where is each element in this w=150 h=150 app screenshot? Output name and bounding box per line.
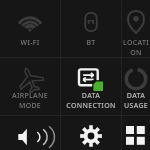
button[interactable]: DATA CONNECTION: [61, 58, 121, 115]
button[interactable]: SETTINGS: [61, 116, 121, 150]
button[interactable]: AIRPLANE MODE: [0, 58, 60, 115]
staticText: LOCATION: [123, 38, 149, 57]
staticText: AIRPLANE MODE: [1, 91, 59, 110]
button[interactable]: VOLUME: [0, 116, 60, 150]
button[interactable]: APPS: [122, 116, 150, 150]
staticText: DATA CONNECTION: [62, 91, 120, 110]
staticText: BT: [62, 38, 120, 48]
staticText: WI-FI: [1, 38, 59, 48]
button[interactable]: WI-FI: [0, 0, 60, 57]
button[interactable]: DATA USAGE: [122, 58, 150, 115]
staticText: DATA USAGE: [123, 91, 149, 110]
button[interactable]: BT: [61, 0, 121, 57]
button[interactable]: LOCATION: [122, 0, 150, 57]
